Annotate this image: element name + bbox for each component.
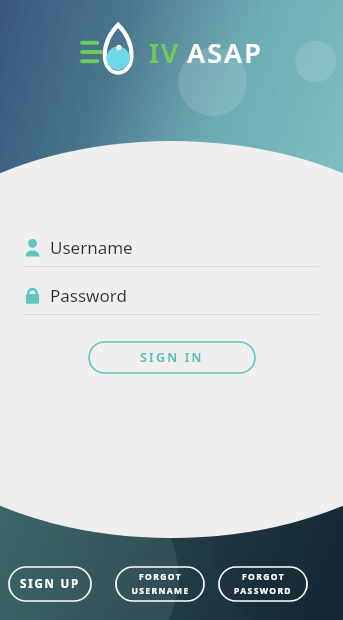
- button[interactable]: SIGN UP: [8, 566, 92, 602]
- button[interactable]: Password: [24, 284, 319, 315]
- button[interactable]: SIGN IN: [88, 341, 256, 374]
- button[interactable]: FORGOT: [115, 566, 205, 602]
- staticText: PASSWORD: [234, 585, 292, 597]
- staticText: SIGN UP: [20, 576, 80, 592]
- staticText: FORGOT: [139, 571, 182, 583]
- staticText: ASAP: [187, 34, 263, 71]
- staticText: Username: [50, 236, 133, 259]
- staticText: Password: [50, 284, 127, 307]
- staticText: USERNAME: [131, 585, 190, 597]
- staticText: IV: [149, 34, 181, 71]
- button[interactable]: FORGOT: [218, 566, 308, 602]
- staticText: FORGOT: [242, 571, 285, 583]
- button[interactable]: Username: [24, 236, 319, 267]
- staticText: SIGN IN: [140, 349, 204, 366]
